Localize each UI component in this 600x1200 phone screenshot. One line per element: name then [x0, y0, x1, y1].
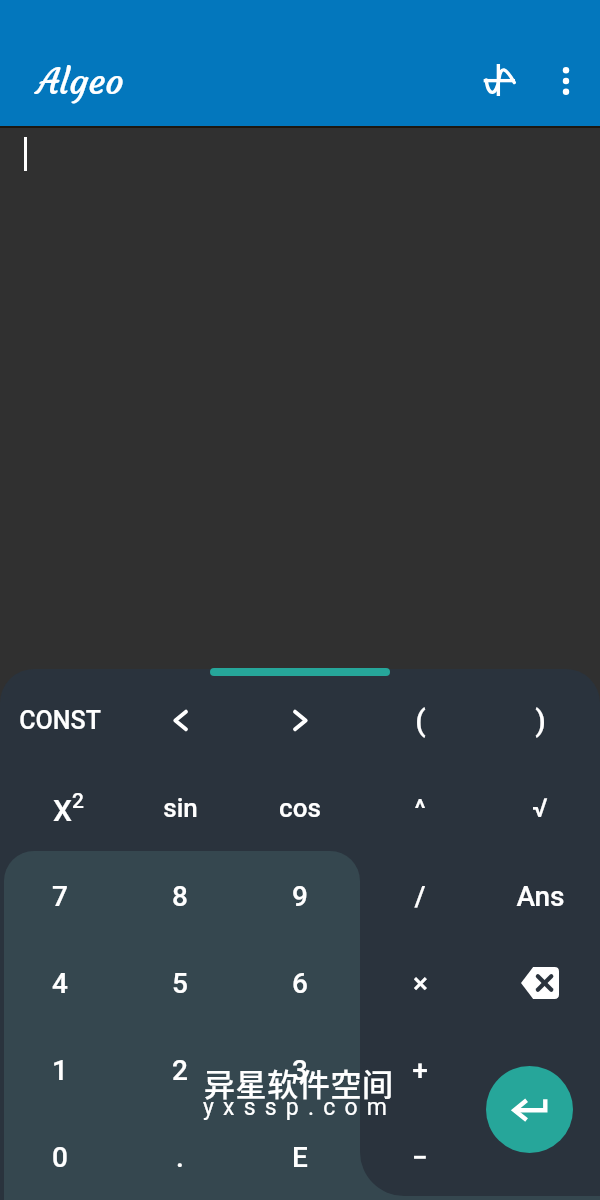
- staticText: 6: [292, 967, 308, 1000]
- staticText: 7: [52, 880, 68, 913]
- button[interactable]: ×: [360, 939, 480, 1027]
- staticText: 9: [292, 880, 308, 913]
- button[interactable]: √: [480, 764, 600, 852]
- staticText: sin: [163, 793, 198, 823]
- button[interactable]: X: [0, 764, 120, 852]
- button[interactable]: 2: [120, 1026, 240, 1114]
- button[interactable]: .: [120, 1113, 240, 1200]
- button[interactable]: 0: [0, 1113, 120, 1200]
- staticText: (: [415, 703, 426, 738]
- button[interactable]: Enter: [486, 1066, 573, 1153]
- staticText: .: [176, 1141, 184, 1174]
- button[interactable]: 5: [120, 939, 240, 1027]
- button[interactable]: (: [360, 676, 480, 764]
- button[interactable]: 9: [240, 852, 360, 940]
- staticText: ^: [414, 793, 426, 823]
- button[interactable]: +: [360, 1026, 480, 1114]
- staticText: 5: [172, 967, 188, 1000]
- button[interactable]: E: [240, 1113, 360, 1200]
- button[interactable]: Move right: [240, 676, 360, 764]
- button[interactable]: 3: [240, 1026, 360, 1114]
- staticText: Algeo: [37, 59, 124, 104]
- button[interactable]: 1: [0, 1026, 120, 1114]
- staticText: 异星软件空间: [204, 1060, 394, 1105]
- staticText: ): [535, 703, 546, 738]
- staticText: Ans: [516, 880, 565, 913]
- button[interactable]: −: [360, 1113, 480, 1200]
- staticText: √: [532, 793, 548, 823]
- staticText: /: [414, 880, 426, 913]
- staticText: X: [53, 793, 72, 828]
- button[interactable]: sin: [120, 764, 240, 852]
- staticText: 0: [52, 1141, 68, 1174]
- button[interactable]: 8: [120, 852, 240, 940]
- staticText: 2: [72, 789, 84, 814]
- staticText: cos: [279, 793, 321, 823]
- staticText: 4: [52, 967, 68, 1000]
- button[interactable]: Move left: [120, 676, 240, 764]
- button[interactable]: Backspace: [480, 939, 600, 1027]
- staticText: −: [412, 1141, 428, 1174]
- button[interactable]: CONST: [0, 676, 120, 764]
- staticText: E: [292, 1141, 308, 1174]
- staticText: 1: [52, 1054, 68, 1087]
- button[interactable]: 7: [0, 852, 120, 940]
- staticText: 8: [172, 880, 188, 913]
- button[interactable]: cos: [240, 764, 360, 852]
- button[interactable]: 6: [240, 939, 360, 1027]
- button[interactable]: More options: [542, 57, 590, 105]
- staticText: +: [412, 1054, 428, 1087]
- staticText: yxssp.com: [203, 1094, 397, 1121]
- staticText: 3: [292, 1054, 308, 1087]
- staticText: CONST: [19, 706, 101, 735]
- button[interactable]: Ans: [480, 852, 600, 940]
- button[interactable]: Graph: [475, 56, 523, 104]
- button[interactable]: ): [480, 676, 600, 764]
- button[interactable]: 4: [0, 939, 120, 1027]
- staticText: ×: [413, 967, 428, 1000]
- button[interactable]: ^: [360, 764, 480, 852]
- button[interactable]: /: [360, 852, 480, 940]
- staticText: 2: [172, 1054, 188, 1087]
